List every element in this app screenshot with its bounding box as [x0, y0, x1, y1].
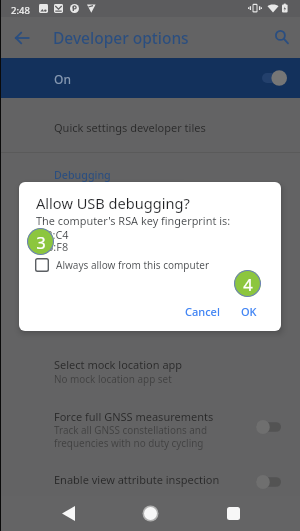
staticText: 4 — [243, 273, 253, 295]
staticText: Track all GNSS constellations and — [54, 423, 208, 436]
button[interactable]: Quick settings developer tiles — [0, 98, 300, 152]
staticText: Quick settings developer tiles — [54, 120, 206, 135]
button[interactable]: Search — [270, 26, 294, 50]
button[interactable]: Recent apps — [215, 496, 251, 531]
staticText: 3 — [36, 231, 46, 253]
staticText: 28:C4 — [40, 227, 69, 242]
staticText: 2:48 — [11, 4, 30, 17]
button[interactable]: On — [0, 58, 300, 98]
staticText: Enable view attribute inspection — [54, 472, 220, 487]
button[interactable]: Force full GNSS measurements — [0, 397, 300, 459]
button[interactable]: Back — [50, 496, 300, 531]
staticText: frequencies with no duty cycling — [54, 436, 204, 449]
staticText: Developer options — [53, 27, 189, 48]
button[interactable]: Enable view attribute inspection — [0, 459, 300, 496]
staticText: 6B:F8 — [40, 239, 69, 254]
staticText: OK — [241, 304, 257, 319]
button[interactable]: Cancel — [179, 300, 226, 323]
staticText: Force full GNSS measurements — [54, 409, 214, 424]
staticText: Select mock location app — [54, 357, 183, 372]
staticText: On — [54, 71, 71, 87]
button[interactable]: Home — [132, 496, 168, 531]
button[interactable]: Back — [50, 496, 86, 531]
staticText: Allow USB debugging? — [36, 193, 190, 213]
button[interactable]: OK — [235, 300, 263, 323]
button[interactable]: Select mock location app — [0, 345, 300, 397]
staticText: No mock location app set — [54, 372, 172, 385]
staticText: Cancel — [185, 304, 220, 319]
button[interactable]: Navigate up — [10, 26, 34, 50]
button[interactable]: Always allow from this computer — [35, 258, 210, 272]
staticText: The computer's RSA key fingerprint is: — [36, 213, 231, 228]
staticText: Always allow from this computer — [56, 258, 210, 272]
staticText: Debugging — [54, 168, 111, 183]
